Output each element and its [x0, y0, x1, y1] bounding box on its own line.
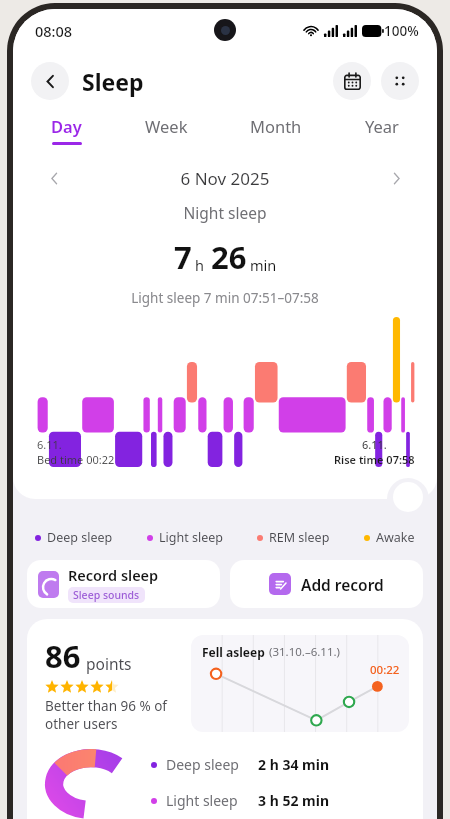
- staticText: 100%: [384, 22, 419, 40]
- staticText: Light sleep: [159, 529, 223, 546]
- staticText: Light sleep 7 min 07:51–07:58: [13, 289, 437, 307]
- button[interactable]: Light sleep: [147, 529, 223, 546]
- staticText: min: [250, 255, 277, 275]
- staticText: Day: [51, 115, 82, 137]
- button[interactable]: Awake: [364, 529, 415, 546]
- button[interactable]: REM sleep: [257, 529, 330, 546]
- staticText: points: [86, 653, 132, 674]
- button[interactable]: Month: [240, 109, 312, 151]
- button[interactable]: More options: [381, 62, 419, 100]
- button[interactable]: Next day: [381, 163, 411, 193]
- staticText: Deep sleep: [166, 755, 258, 774]
- staticText: (31.10.–6.11.): [269, 644, 341, 660]
- staticText: other users: [45, 715, 118, 733]
- staticText: h: [195, 255, 204, 275]
- staticText: 86: [45, 635, 81, 677]
- staticText: Bed time 00:22: [37, 452, 115, 467]
- staticText: Year: [365, 115, 399, 137]
- staticText: Sleep sounds: [73, 588, 140, 602]
- button[interactable]: Calendar: [333, 62, 371, 100]
- staticText: Night sleep: [13, 202, 437, 223]
- staticText: Light sleep: [166, 791, 258, 810]
- staticText: 08:08: [35, 21, 73, 41]
- staticText: Awake: [376, 529, 415, 546]
- staticText: Sleep: [82, 66, 144, 97]
- button[interactable]: Year: [355, 109, 409, 151]
- button[interactable]: Record sleep: [27, 560, 220, 608]
- staticText: Fell asleep: [202, 644, 265, 660]
- button[interactable]: Week: [135, 109, 198, 151]
- staticText: Week: [145, 115, 188, 137]
- staticText: 7: [174, 236, 192, 278]
- button[interactable]: Back: [31, 62, 69, 100]
- staticText: 26: [211, 236, 247, 278]
- staticText: Rise time 07:58: [334, 452, 415, 467]
- staticText: REM sleep: [269, 529, 330, 546]
- button[interactable]: Expand sleep details: [393, 482, 423, 512]
- staticText: 6.11.: [362, 437, 387, 452]
- staticText: Record sleep: [68, 565, 159, 585]
- button[interactable]: Fell asleep trend chart: [191, 635, 409, 732]
- staticText: Deep sleep: [47, 529, 113, 546]
- staticText: 00:22: [370, 662, 400, 678]
- staticText: Month: [250, 115, 302, 137]
- staticText: Better than 96 % of: [45, 697, 167, 715]
- staticText: 6.11.: [37, 437, 62, 452]
- button[interactable]: Previous day: [39, 163, 69, 193]
- staticText: Add record: [301, 574, 384, 595]
- staticText: 3 h 52 min: [258, 791, 329, 810]
- button[interactable]: Day: [41, 109, 92, 151]
- button[interactable]: 86: [27, 619, 423, 819]
- button[interactable]: Deep sleep: [35, 529, 113, 546]
- staticText: 2 h 34 min: [258, 755, 329, 774]
- staticText: 6 Nov 2025: [69, 167, 381, 190]
- button[interactable]: Add record: [230, 560, 423, 608]
